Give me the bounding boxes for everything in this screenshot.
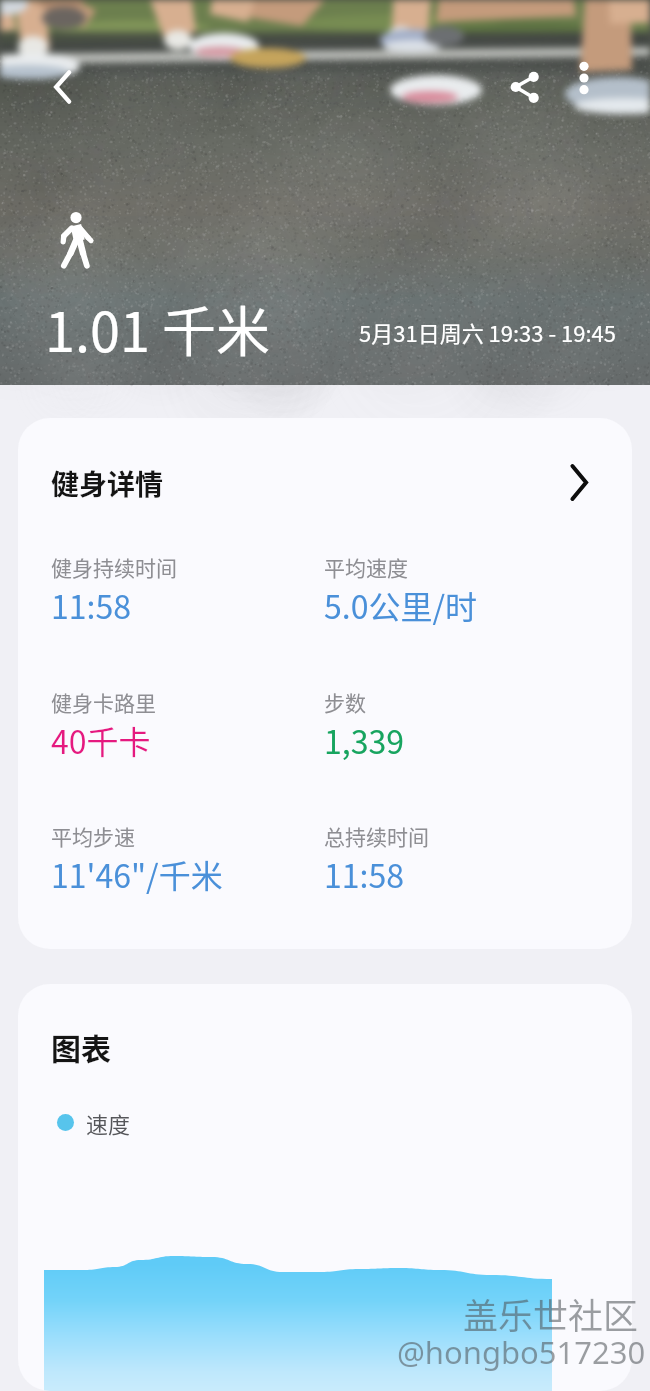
staticText: 健身详情 <box>51 463 164 504</box>
staticText: 平均速度 <box>324 552 408 582</box>
staticText: 1.01 千米 <box>45 289 271 367</box>
staticText: 1,339 <box>324 717 404 763</box>
staticText: 总持续时间 <box>324 821 429 851</box>
staticText: 健身卡路里 <box>51 687 156 717</box>
button[interactable]: More options <box>550 44 618 112</box>
staticText: 11'46"/千米 <box>51 851 223 897</box>
staticText: 平均步速 <box>51 821 135 851</box>
staticText: 11:58 <box>324 851 404 897</box>
staticText: 5月31日周六 19:33 - 19:45 <box>359 316 616 348</box>
button[interactable]: 健身详情 <box>18 418 632 542</box>
button[interactable]: Back <box>20 44 106 130</box>
staticText: 5.0公里/时 <box>324 582 477 628</box>
staticText: 健身持续时间 <box>51 552 177 582</box>
staticText: 40千卡 <box>51 717 151 763</box>
staticText: 盖乐世社区 <box>463 1288 639 1339</box>
staticText: @hongbo517230 <box>397 1331 646 1373</box>
staticText: 图表 <box>51 1025 111 1068</box>
staticText: 11:58 <box>51 582 131 628</box>
staticText: 速度 <box>86 1107 131 1139</box>
button[interactable]: Share <box>482 44 568 130</box>
staticText: 步数 <box>324 687 366 717</box>
